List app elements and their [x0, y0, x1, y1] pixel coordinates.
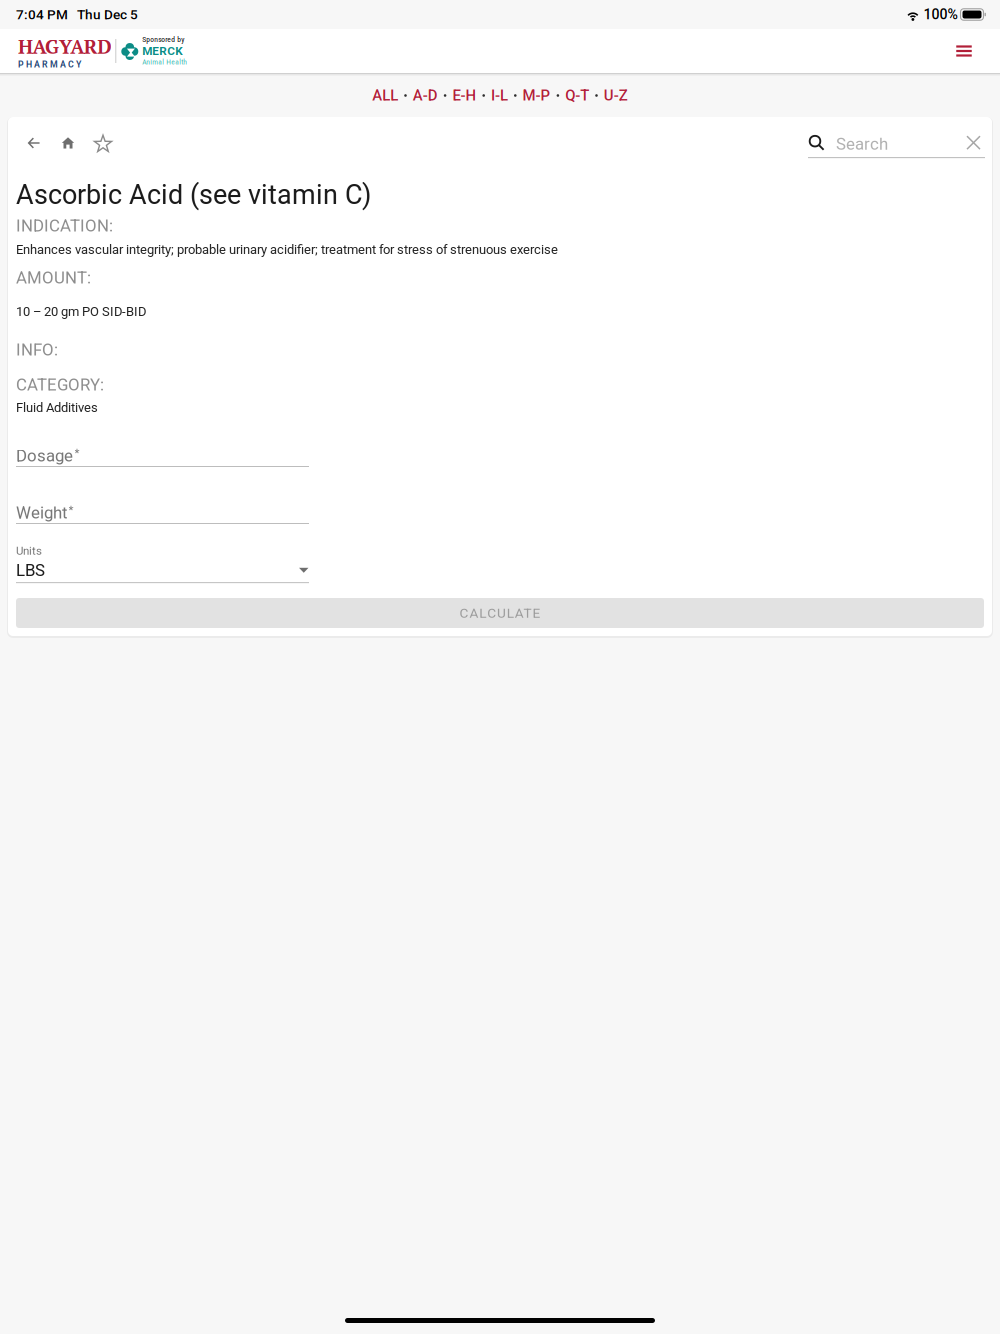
button[interactable]: Home: [51, 126, 85, 160]
button[interactable]: U-Z: [604, 81, 628, 110]
staticText: Dosage: [16, 446, 73, 466]
staticText: *: [74, 446, 79, 459]
staticText: Thu Dec 5: [77, 6, 138, 22]
staticText: 100%: [923, 6, 957, 23]
staticText: Search: [836, 134, 888, 154]
staticText: I-L: [491, 87, 508, 104]
staticText: 10 – 20 gm PO SID-BID: [16, 304, 146, 319]
staticText: A-D: [413, 87, 438, 104]
staticText: Fluid Additives: [16, 400, 98, 415]
staticText: LBS: [16, 560, 45, 580]
staticText: 7:04 PM: [16, 6, 68, 22]
staticText: Q-T: [565, 87, 589, 104]
staticText: Enhances vascular integrity; probable ur…: [16, 242, 558, 257]
button[interactable]: M-P: [523, 81, 551, 110]
button[interactable]: I-L: [491, 81, 508, 110]
button[interactable]: Clear search: [966, 135, 981, 150]
staticText: MERCK: [142, 44, 182, 58]
staticText: Weight: [16, 503, 67, 523]
staticText: *: [68, 503, 73, 516]
button[interactable]: Add to favorites: [86, 127, 120, 161]
staticText: CATEGORY:: [16, 375, 104, 395]
staticText: U-Z: [604, 87, 628, 104]
button[interactable]: CALCULATE: [16, 598, 984, 628]
staticText: ALL: [372, 87, 398, 104]
button[interactable]: ALL: [372, 81, 398, 110]
staticText: INDICATION:: [16, 216, 113, 236]
staticText: INFO:: [16, 340, 58, 360]
staticText: M-P: [523, 87, 551, 104]
button[interactable]: Menu: [942, 30, 986, 72]
staticText: HAGYARD: [18, 33, 111, 59]
button[interactable]: Back: [17, 126, 51, 160]
button[interactable]: Q-T: [565, 81, 589, 110]
staticText: Units: [16, 544, 42, 557]
staticText: E-H: [452, 87, 476, 104]
button[interactable]: A-D: [413, 81, 438, 110]
staticText: CALCULATE: [460, 605, 540, 621]
staticText: AMOUNT:: [16, 268, 91, 288]
staticText: PHARMACY: [18, 59, 81, 70]
staticText: Animal Health: [142, 58, 187, 66]
staticText: Ascorbic Acid (see vitamin C): [16, 179, 371, 211]
staticText: Sponsored by: [142, 36, 184, 44]
button[interactable]: E-H: [452, 81, 476, 110]
